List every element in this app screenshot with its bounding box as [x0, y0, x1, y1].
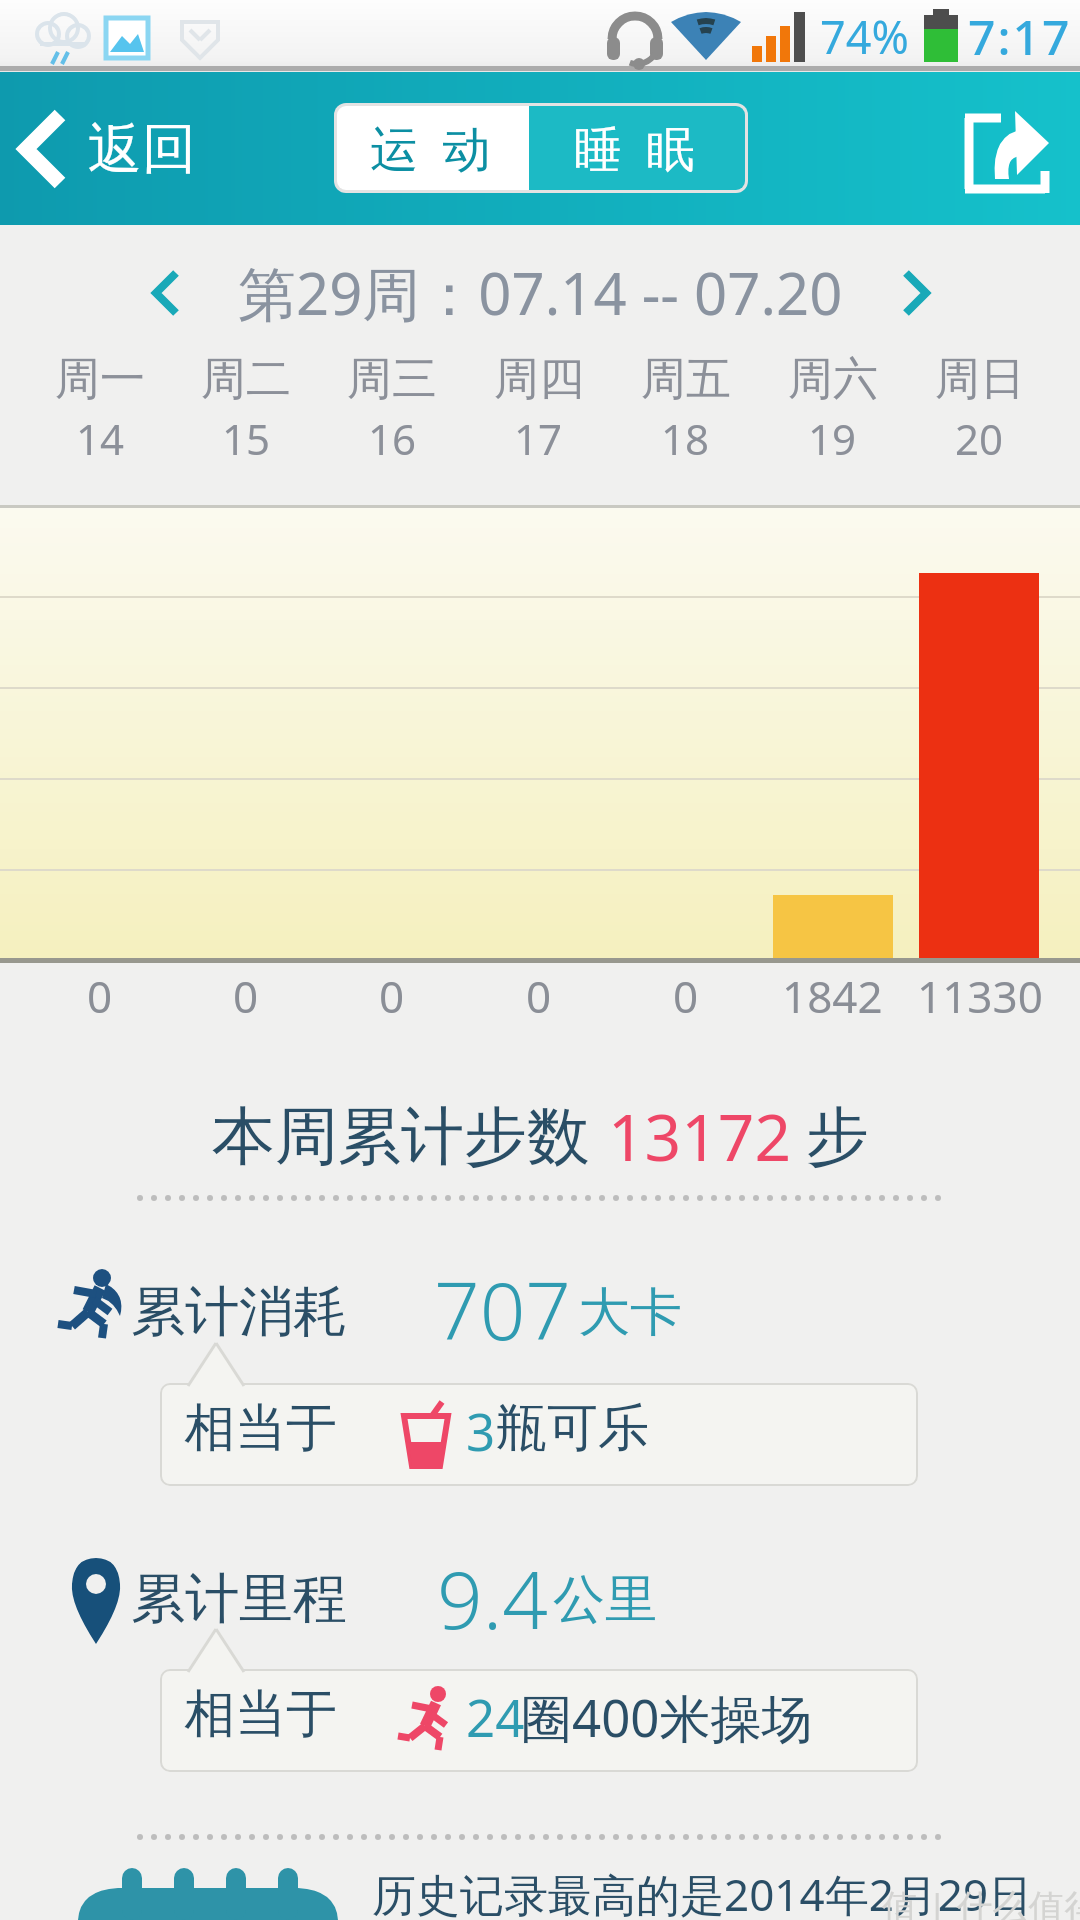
button[interactable]	[130, 255, 200, 330]
staticText: 累计里程	[131, 1565, 347, 1633]
staticText: 7:17	[968, 4, 1072, 69]
staticText: 历史记录最高的是2014年2月29日	[372, 1864, 1033, 1920]
button[interactable]: 运 动	[337, 106, 529, 190]
staticText: 圈400米操场	[521, 1682, 813, 1752]
staticText: 0	[673, 966, 699, 1026]
staticText: 0	[526, 966, 552, 1026]
staticText: 20	[955, 410, 1004, 467]
staticText: 0	[233, 966, 259, 1026]
staticText: 累计消耗	[131, 1278, 347, 1346]
staticText: 周四	[494, 351, 584, 408]
staticText: 1842	[782, 966, 883, 1026]
staticText: 0	[87, 966, 113, 1026]
staticText: 16	[368, 410, 417, 467]
staticText: 公里	[553, 1567, 657, 1633]
staticText: 返回	[88, 115, 196, 183]
staticText: 13172	[608, 1093, 792, 1180]
staticText: 17	[514, 410, 563, 467]
staticText: 瓶可乐	[496, 1396, 649, 1460]
button[interactable]	[882, 255, 952, 330]
staticText: 步	[806, 1097, 869, 1176]
staticText: 周一	[55, 351, 145, 408]
staticText: 睡 眠	[574, 115, 701, 181]
staticText: 运 动	[370, 115, 497, 181]
staticText: 18	[661, 410, 710, 467]
staticText: 15	[222, 410, 271, 467]
button[interactable]: 睡 眠	[529, 106, 745, 190]
staticText: 3	[466, 1396, 496, 1465]
staticText: 周二	[201, 351, 291, 408]
staticText: 24	[466, 1682, 525, 1751]
staticText: 0	[379, 966, 405, 1026]
staticText: 值 | 什么值得买	[882, 1882, 1080, 1920]
staticText: 9.4	[437, 1543, 548, 1652]
staticText: 相当于	[184, 1682, 337, 1746]
staticText: 11330	[917, 966, 1043, 1026]
button[interactable]	[940, 92, 1065, 207]
staticText: 周六	[788, 351, 878, 408]
staticText: 74%	[820, 6, 909, 67]
staticText: 19	[808, 410, 857, 467]
staticText: 周三	[347, 351, 437, 408]
staticText: 第29周：07.14 -- 07.20	[238, 253, 843, 332]
staticText: 相当于	[184, 1396, 337, 1460]
staticText: 周五	[641, 351, 731, 408]
staticText: 707	[434, 1254, 572, 1363]
button[interactable]: 返回	[14, 72, 229, 225]
staticText: 本周累计步数	[212, 1097, 590, 1176]
staticText: 大卡	[578, 1280, 682, 1346]
staticText: 14	[76, 410, 125, 467]
staticText: 周日	[935, 351, 1025, 408]
